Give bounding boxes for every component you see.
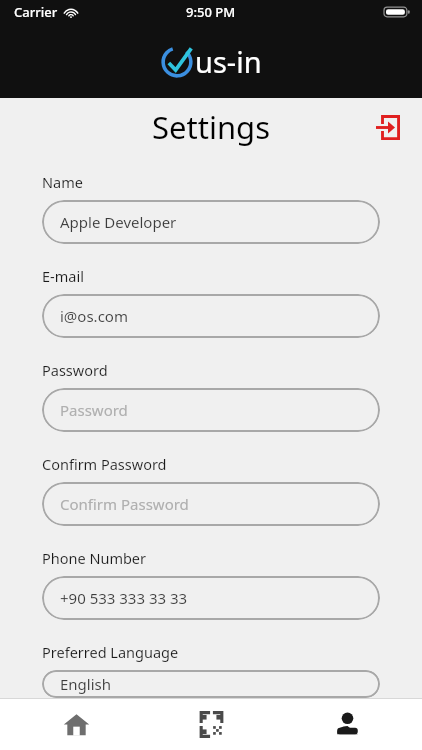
staticText: Password bbox=[60, 400, 128, 420]
staticText: +90 533 333 33 33 bbox=[60, 588, 188, 608]
staticText: Password bbox=[42, 360, 108, 380]
staticText: Preferred Language bbox=[42, 642, 179, 662]
button[interactable]: English bbox=[42, 670, 380, 698]
button[interactable]: Confirm Password bbox=[42, 482, 380, 526]
button[interactable]: Password bbox=[42, 388, 380, 432]
staticText: 9:50 PM bbox=[186, 3, 236, 21]
button[interactable]: Apple Developer bbox=[42, 200, 380, 244]
button[interactable]: Scan QR code bbox=[151, 699, 271, 750]
staticText: English bbox=[60, 674, 112, 694]
staticText: Phone Number bbox=[42, 548, 147, 568]
staticText: us-in bbox=[195, 42, 262, 81]
button[interactable]: +90 533 333 33 33 bbox=[42, 576, 380, 620]
staticText: Carrier bbox=[14, 3, 58, 21]
button[interactable]: i@os.com bbox=[42, 294, 380, 338]
button[interactable]: Profile bbox=[287, 699, 407, 750]
button[interactable]: Log out bbox=[370, 110, 404, 144]
staticText: E-mail bbox=[42, 266, 84, 286]
staticText: Name bbox=[42, 172, 83, 192]
staticText: Apple Developer bbox=[60, 212, 177, 232]
button[interactable]: Home bbox=[16, 699, 136, 750]
staticText: Settings bbox=[152, 106, 270, 148]
staticText: i@os.com bbox=[60, 306, 128, 326]
staticText: Confirm Password bbox=[42, 454, 167, 474]
staticText: Confirm Password bbox=[60, 494, 189, 514]
